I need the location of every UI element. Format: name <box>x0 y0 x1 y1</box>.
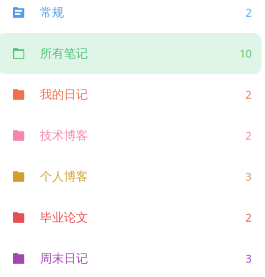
staticText: 个人博客 <box>40 169 88 184</box>
staticText: 3 <box>245 251 251 266</box>
staticText: 周末日记 <box>40 251 88 266</box>
button[interactable]: 我的日记 <box>0 74 265 115</box>
staticText: 10 <box>239 46 251 61</box>
staticText: 2 <box>245 5 251 20</box>
staticText: 我的日记 <box>40 87 88 102</box>
staticText: 常规 <box>40 5 64 20</box>
button[interactable]: 周末日记 <box>0 238 265 277</box>
button[interactable]: 毕业论文 <box>0 197 265 238</box>
staticText: 3 <box>245 169 251 184</box>
button[interactable]: 所有笔记 <box>0 33 265 74</box>
staticText: 2 <box>245 210 251 225</box>
button[interactable]: 常规 <box>0 0 265 33</box>
staticText: 毕业论文 <box>40 210 88 225</box>
staticText: 所有笔记 <box>40 46 88 61</box>
staticText: 2 <box>245 87 251 102</box>
staticText: 2 <box>245 128 251 143</box>
button[interactable]: 技术博客 <box>0 115 265 156</box>
staticText: 技术博客 <box>40 128 88 143</box>
button[interactable]: 个人博客 <box>0 156 265 197</box>
